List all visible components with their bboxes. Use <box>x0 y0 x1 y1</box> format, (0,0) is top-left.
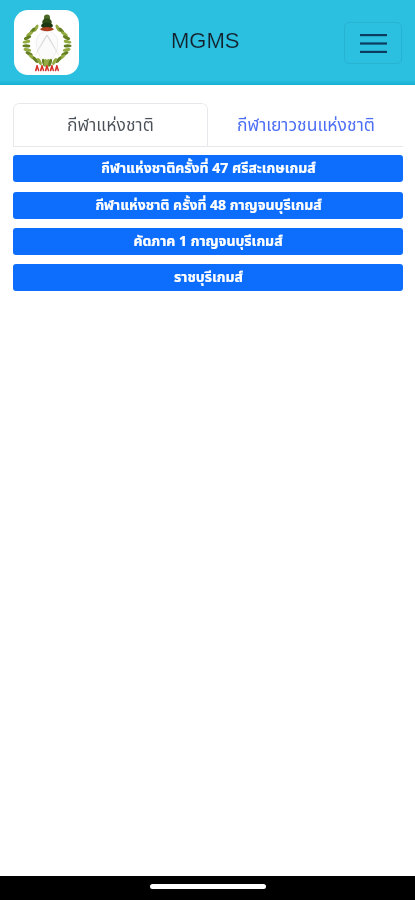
staticText: ราชบุรีเกมส์ <box>174 267 243 288</box>
staticText: MGMS <box>171 28 240 53</box>
button[interactable]: กีฬาแห่งชาติครั้งที่ 47 ศรีสะเกษเกมส์ <box>13 155 403 182</box>
button[interactable]: กีฬาแห่งชาติ <box>13 103 208 147</box>
button[interactable]: กีฬาแห่งชาติ ครั้งที่ 48 กาญจนบุรีเกมส์ <box>13 192 403 219</box>
staticText: กีฬาแห่งชาติครั้งที่ 47 ศรีสะเกษเกมส์ <box>101 158 316 179</box>
staticText: กีฬาแห่งชาติ ครั้งที่ 48 กาญจนบุรีเกมส์ <box>95 195 322 216</box>
button[interactable]: App logo <box>14 10 79 75</box>
button[interactable]: กีฬาเยาวชนแห่งชาติ <box>208 103 403 147</box>
staticText: คัดภาค 1 กาญจนบุรีเกมส์ <box>133 231 283 252</box>
button[interactable]: ราชบุรีเกมส์ <box>13 264 403 291</box>
staticText: กีฬาเยาวชนแห่งชาติ <box>237 112 375 138</box>
button[interactable]: คัดภาค 1 กาญจนบุรีเกมส์ <box>13 228 403 255</box>
staticText: กีฬาแห่งชาติ <box>67 112 154 138</box>
button[interactable]: Menu <box>344 22 402 64</box>
